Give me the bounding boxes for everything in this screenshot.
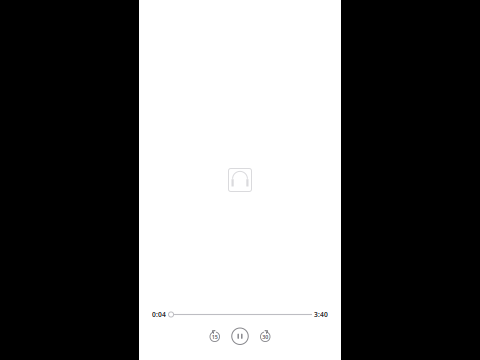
staticText: 15	[212, 333, 218, 340]
staticText: 3:40	[314, 310, 328, 319]
staticText: 0:04	[152, 310, 166, 319]
button[interactable]: Skip back 15 seconds	[209, 330, 221, 342]
button[interactable]: Play	[231, 327, 249, 345]
staticText: 30	[262, 333, 268, 340]
button[interactable]: Playback position	[168, 310, 312, 318]
button[interactable]: Skip forward 30 seconds	[259, 330, 271, 342]
